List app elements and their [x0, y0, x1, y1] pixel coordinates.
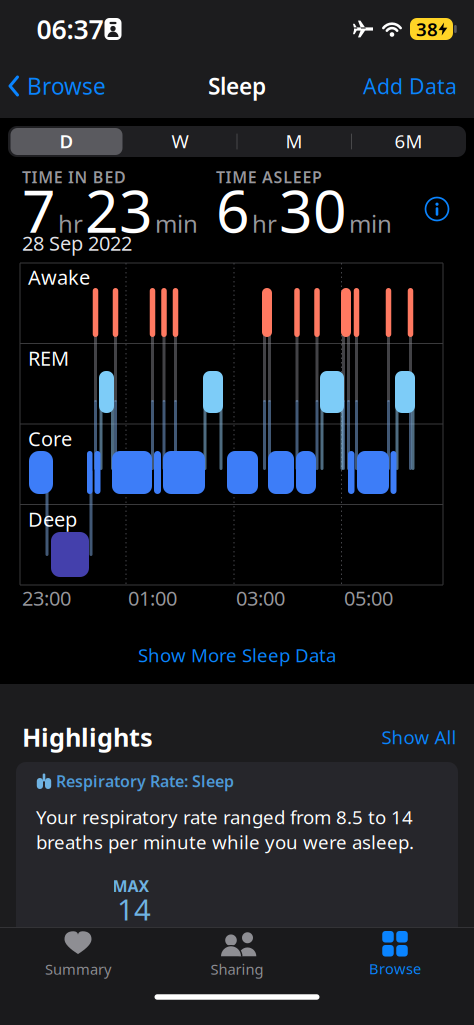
staticText: Add Data	[363, 72, 457, 100]
staticText: Your respiratory rate ranged from 8.5 to…	[36, 805, 413, 829]
staticText: 23:00	[22, 585, 71, 611]
staticText: Show More Sleep Data	[138, 643, 336, 667]
staticText: TIME IN BED	[22, 166, 126, 188]
staticText: 03:00	[236, 585, 285, 611]
staticText: D	[59, 129, 73, 153]
staticText: M	[285, 129, 302, 153]
button[interactable]: 6M	[394, 129, 422, 153]
button[interactable]	[425, 197, 449, 221]
staticText: Sleep	[208, 71, 266, 101]
staticText: Core	[28, 425, 72, 452]
button[interactable]: Show All	[381, 725, 456, 749]
staticText: W	[171, 129, 188, 153]
staticText: 28 Sep 2022	[22, 230, 132, 256]
staticText: Summary	[45, 959, 111, 979]
staticText: 14	[117, 889, 151, 928]
staticText: 30	[279, 171, 347, 249]
button[interactable]	[10, 128, 122, 155]
staticText: Respiratory Rate: Sleep	[56, 770, 234, 792]
staticText: 05:00	[344, 585, 393, 611]
staticText: Awake	[28, 264, 90, 290]
staticText: breaths per minute while you were asleep…	[36, 830, 414, 854]
staticText: 01:00	[128, 585, 177, 611]
button[interactable]: Browse	[335, 928, 455, 980]
staticText: Show All	[381, 725, 456, 749]
staticText: Highlights	[22, 720, 153, 754]
staticText: Deep	[28, 506, 77, 532]
staticText: 38	[416, 17, 438, 41]
button[interactable]: W	[171, 129, 188, 153]
staticText: 6	[216, 171, 250, 249]
button[interactable]: Add Data	[363, 72, 457, 100]
staticText: hr	[252, 207, 277, 239]
button[interactable]: M	[285, 129, 302, 153]
button[interactable]: Respiratory Rate: Sleep	[16, 762, 458, 1010]
staticText: TIME ASLEEP	[216, 166, 322, 188]
staticText: 7	[22, 171, 56, 249]
staticText: hr	[58, 207, 83, 239]
staticText: Browse	[369, 959, 421, 978]
staticText: min	[349, 207, 392, 239]
button[interactable]: Summary	[18, 931, 138, 979]
staticText: 06:37	[36, 11, 103, 47]
button[interactable]: Show More Sleep Data	[138, 643, 336, 667]
staticText: 23	[85, 171, 153, 249]
staticText: MAX	[112, 875, 149, 897]
button[interactable]: Browse	[8, 71, 106, 101]
staticText: REM	[28, 345, 69, 371]
staticText: Browse	[27, 71, 106, 101]
button[interactable]: Sharing	[177, 931, 297, 979]
staticText: Sharing	[210, 959, 263, 979]
staticText: min	[155, 207, 198, 239]
staticText: 6M	[394, 129, 422, 153]
